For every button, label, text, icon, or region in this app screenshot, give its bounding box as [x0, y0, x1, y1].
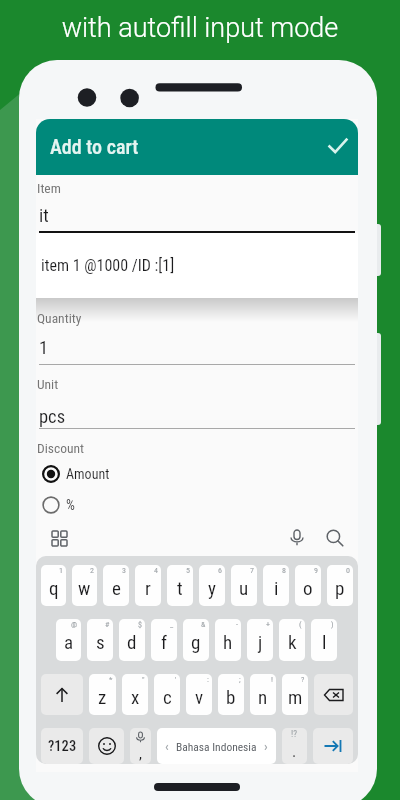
staticText: ;	[239, 675, 241, 684]
button[interactable]: 7	[231, 565, 257, 606]
button[interactable]: ,	[130, 728, 151, 764]
staticText: 1	[59, 566, 63, 575]
button[interactable]: ‹	[157, 728, 276, 764]
staticText: Bahasa Indonesia	[176, 740, 257, 753]
staticText: !?	[291, 729, 298, 740]
button[interactable]: *	[89, 674, 116, 715]
button[interactable]: Clipboard	[46, 525, 72, 551]
staticText: c	[163, 686, 172, 708]
button[interactable]: !?	[282, 728, 307, 764]
button[interactable]: '	[154, 674, 180, 715]
staticText: m	[288, 686, 303, 708]
staticText: 9	[314, 566, 318, 575]
staticText: p	[335, 577, 345, 599]
button[interactable]: Emoji	[89, 728, 124, 764]
staticText: u	[239, 577, 249, 599]
staticText: ?123	[48, 738, 77, 755]
button[interactable]: )	[311, 619, 337, 661]
staticText: 6	[218, 566, 222, 575]
button[interactable]: ;	[218, 674, 244, 715]
staticText: #	[105, 620, 110, 629]
button[interactable]: %	[40, 493, 170, 517]
button[interactable]: 8	[263, 565, 289, 606]
staticText: w	[78, 577, 91, 599]
button[interactable]: Shift	[41, 674, 83, 715]
staticText: j	[258, 631, 263, 653]
button[interactable]: 6	[199, 565, 225, 606]
button[interactable]: !	[250, 674, 276, 715]
staticText: 7	[250, 566, 254, 575]
staticText: Add to cart	[50, 135, 139, 158]
staticText: !	[271, 675, 273, 684]
button[interactable]: +	[247, 619, 273, 661]
button[interactable]: 0	[327, 565, 353, 606]
staticText: t	[177, 577, 183, 599]
button[interactable]: 3	[103, 565, 129, 606]
staticText: 8	[282, 566, 286, 575]
staticText: 4	[154, 566, 158, 575]
staticText: Quantity	[37, 310, 82, 326]
staticText: x	[131, 686, 140, 708]
staticText: item 1 @1000 /ID :[1]	[41, 256, 175, 275]
staticText: q	[49, 577, 59, 599]
staticText: "	[142, 675, 145, 684]
staticText: _	[170, 620, 174, 629]
staticText: pcs	[39, 406, 66, 428]
staticText: '	[175, 675, 177, 684]
staticText: Item	[37, 180, 61, 196]
staticText: Unit	[37, 376, 59, 392]
staticText: ‹	[165, 738, 169, 754]
button[interactable]: _	[151, 619, 177, 661]
staticText: b	[226, 686, 236, 708]
staticText: g	[191, 631, 201, 653]
staticText: :	[207, 675, 209, 684]
button[interactable]: #	[87, 619, 113, 661]
staticText: ›	[264, 738, 268, 754]
button[interactable]: ?123	[41, 728, 83, 764]
staticText: Amount	[66, 466, 110, 482]
staticText: )	[331, 620, 334, 629]
staticText: Discount	[37, 440, 85, 456]
staticText: f	[161, 631, 168, 653]
staticText: 2	[90, 566, 94, 575]
button[interactable]: "	[122, 674, 148, 715]
button[interactable]: Enter	[313, 728, 353, 764]
button[interactable]: -	[215, 619, 241, 661]
staticText: v	[195, 686, 204, 708]
staticText: 5	[186, 566, 190, 575]
staticText: &	[201, 620, 206, 629]
button[interactable]: Search	[322, 525, 348, 551]
staticText: 1	[39, 337, 49, 359]
staticText: +	[266, 620, 270, 629]
button[interactable]: :	[186, 674, 212, 715]
button[interactable]: 2	[72, 565, 97, 606]
staticText: @	[71, 620, 78, 629]
staticText: -	[236, 620, 238, 629]
staticText: %	[66, 497, 75, 513]
staticText: r	[145, 577, 151, 599]
button[interactable]: &	[183, 619, 209, 661]
staticText: o	[303, 577, 313, 599]
button[interactable]: 5	[167, 565, 193, 606]
staticText: d	[127, 631, 137, 653]
button[interactable]: @	[56, 619, 81, 661]
staticText: h	[223, 631, 233, 653]
button[interactable]: Voice input	[284, 525, 310, 551]
button[interactable]: (	[279, 619, 305, 661]
button[interactable]: ?	[282, 674, 308, 715]
staticText: z	[98, 686, 107, 708]
button[interactable]: Save	[321, 130, 355, 164]
button[interactable]: 4	[135, 565, 161, 606]
button[interactable]: $	[119, 619, 145, 661]
button[interactable]: Amount	[40, 462, 170, 486]
staticText: i	[274, 577, 279, 599]
staticText: 0	[346, 566, 350, 575]
button[interactable]: 9	[295, 565, 321, 606]
button[interactable]: Backspace	[314, 674, 353, 715]
staticText: (	[299, 620, 302, 629]
staticText: .	[292, 742, 297, 761]
staticText: *	[109, 675, 113, 684]
button[interactable]: 1	[41, 565, 66, 606]
staticText: $	[138, 620, 142, 629]
staticText: e	[112, 577, 121, 599]
